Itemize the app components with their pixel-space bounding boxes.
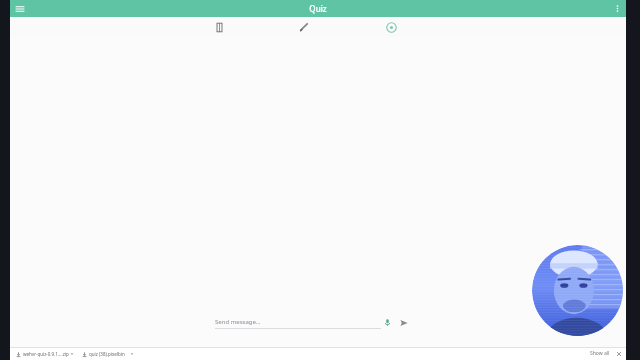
button[interactable]: More options [611, 2, 624, 15]
button[interactable]: Edit [295, 18, 313, 36]
button[interactable]: Video preview [532, 245, 623, 336]
button[interactable]: Menu [13, 2, 26, 15]
button[interactable]: Send [397, 316, 410, 329]
button[interactable]: Send message... [215, 315, 381, 329]
button[interactable]: quiz (38).pixelbin [80, 349, 136, 359]
button[interactable]: Close downloads bar [615, 350, 623, 358]
button[interactable]: Show all [588, 349, 612, 358]
staticText: Quiz [309, 3, 327, 14]
staticText: quiz (38).pixelbin [89, 351, 130, 357]
staticText: Send message... [215, 318, 261, 326]
staticText: Show all [590, 350, 610, 357]
button[interactable]: Record [382, 18, 400, 36]
staticText: wehvr-quiz-0.9.1....zip [23, 351, 70, 357]
button[interactable]: Voice input [381, 316, 394, 329]
button[interactable]: wehvr-quiz-0.9.1....zip [14, 349, 76, 359]
button[interactable]: Notes [210, 18, 228, 36]
